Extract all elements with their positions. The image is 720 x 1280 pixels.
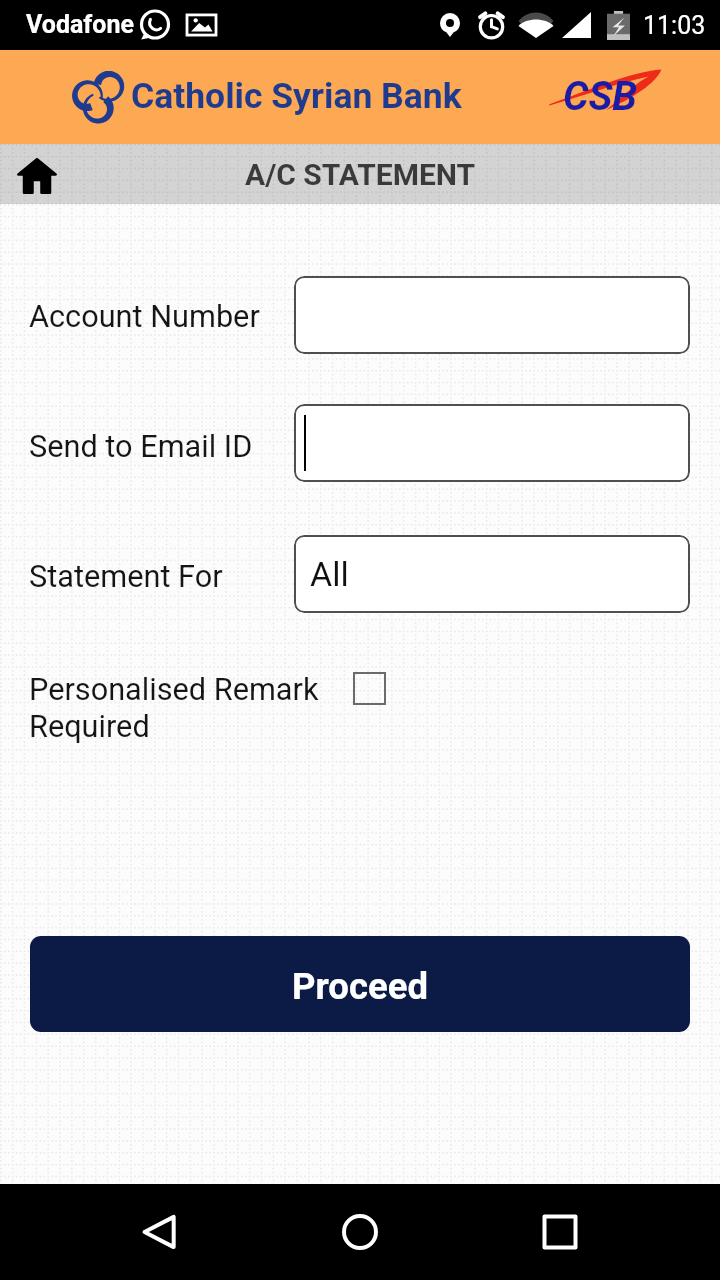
button[interactable]: Home xyxy=(8,145,66,203)
button[interactable]: Home xyxy=(320,1184,400,1280)
staticText: CSB xyxy=(563,73,638,120)
button[interactable]: Back xyxy=(120,1184,200,1280)
button[interactable]: Account Number xyxy=(294,276,690,354)
staticText: Personalised Remark Required xyxy=(29,672,319,744)
staticText: Catholic Syrian Bank xyxy=(131,75,462,117)
button[interactable]: Send to Email ID xyxy=(294,404,690,482)
button[interactable]: Statement For xyxy=(294,535,690,613)
button[interactable]: Recents xyxy=(520,1184,600,1280)
button[interactable]: Proceed xyxy=(30,936,690,1032)
staticText: Account Number xyxy=(29,299,260,335)
staticText: Statement For xyxy=(29,559,223,595)
staticText: A/C STATEMENT xyxy=(245,157,476,192)
staticText: 11:03 xyxy=(643,11,706,40)
staticText: Send to Email ID xyxy=(29,429,253,465)
button[interactable]: Personalised Remark Required xyxy=(353,672,386,705)
staticText: Proceed xyxy=(292,965,428,1008)
button[interactable]: Personalised Remark Required xyxy=(29,666,389,748)
staticText: Vodafone xyxy=(26,10,134,39)
staticText: All xyxy=(310,554,349,594)
